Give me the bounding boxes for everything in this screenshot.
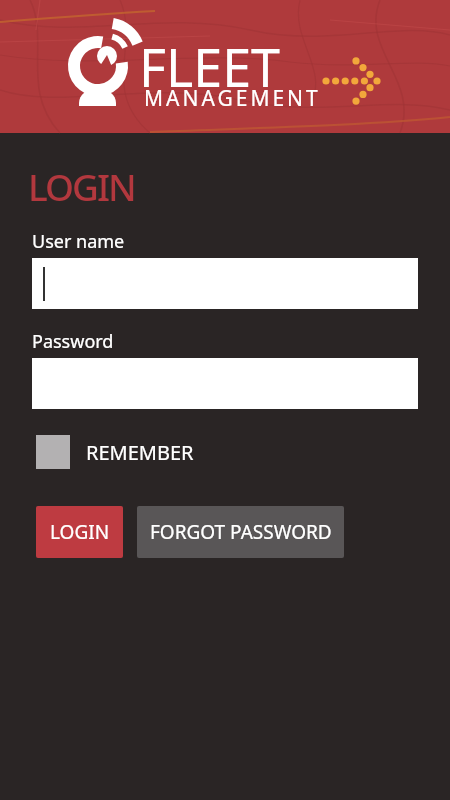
staticText: REMEMBER (86, 439, 194, 466)
staticText: LOGIN (28, 161, 135, 211)
button[interactable]: REMEMBER (36, 435, 194, 469)
button[interactable]: LOGIN (36, 506, 123, 558)
staticText: FLEET (139, 31, 280, 102)
staticText: MANAGEMENT (144, 84, 321, 113)
button[interactable]: FORGOT PASSWORD (137, 506, 344, 558)
staticText: FORGOT PASSWORD (150, 519, 332, 545)
staticText: LOGIN (50, 519, 110, 545)
button[interactable] (32, 258, 418, 309)
staticText: User name (32, 229, 125, 254)
staticText: Password (32, 329, 114, 354)
